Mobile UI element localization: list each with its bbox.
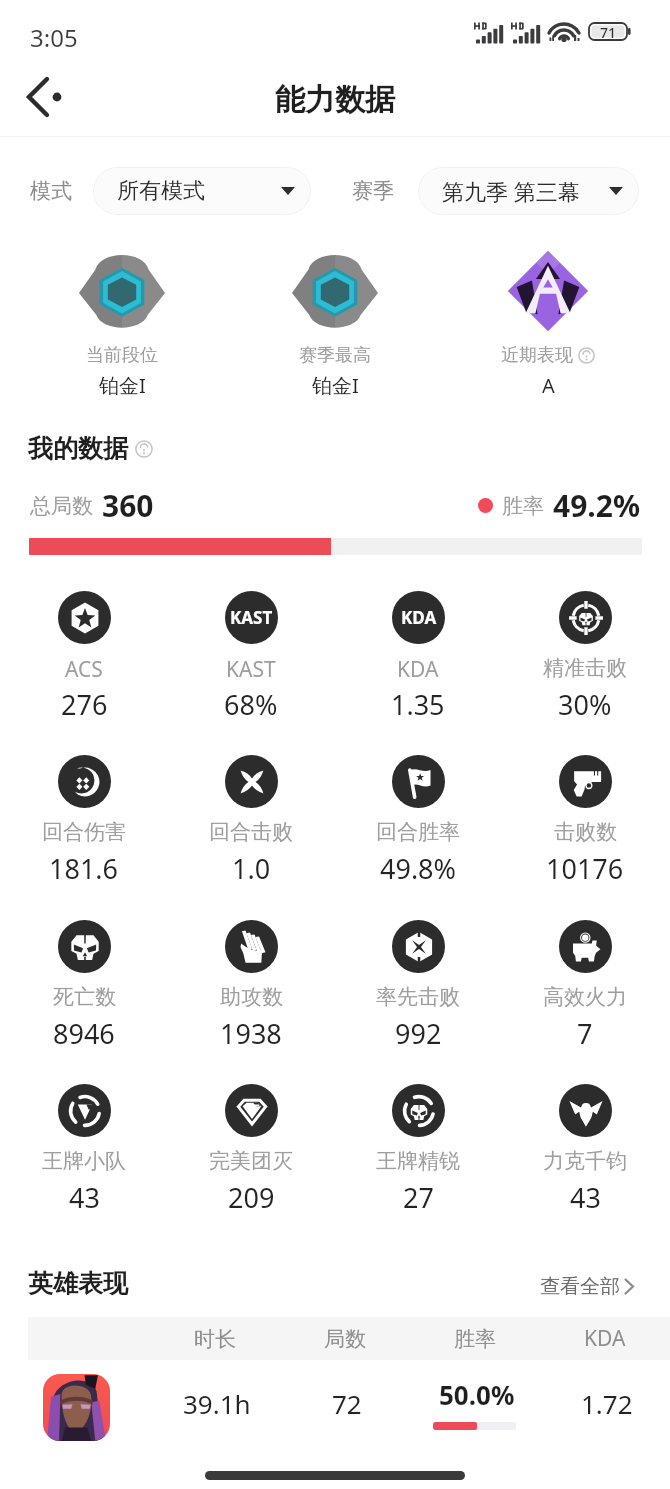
button[interactable]: 近期表现 xyxy=(488,232,608,412)
button[interactable] xyxy=(43,1374,110,1441)
staticText: KDA xyxy=(397,655,439,684)
staticText: ACS xyxy=(65,655,103,684)
staticText: 英雄表现 xyxy=(28,1268,128,1299)
button[interactable]: 完美团灭 xyxy=(171,1076,331,1221)
button[interactable]: 第九季 第三幕 xyxy=(418,167,639,215)
staticText: 能力数据 xyxy=(275,81,395,119)
button[interactable]: 助攻数 xyxy=(171,912,331,1057)
button[interactable]: 击败数 xyxy=(505,747,665,892)
staticText: 回合胜率 xyxy=(376,819,460,845)
staticText: KDA xyxy=(401,606,437,629)
staticText: 209 xyxy=(228,1179,275,1216)
staticText: 39.1h xyxy=(183,1386,251,1421)
staticText: 8946 xyxy=(53,1015,115,1052)
button[interactable]: 王牌精锐 xyxy=(338,1076,498,1221)
button[interactable]: 精准击败 xyxy=(505,583,665,728)
staticText: 近期表现 xyxy=(501,344,573,367)
staticText: 回合伤害 xyxy=(42,819,126,845)
staticText: 276 xyxy=(61,686,108,723)
staticText: A xyxy=(542,372,555,399)
staticText: 胜率 xyxy=(502,493,544,519)
staticText: 27 xyxy=(403,1179,434,1216)
staticText: 30% xyxy=(558,686,612,723)
staticText: 赛季 xyxy=(352,178,394,204)
staticText: 7 xyxy=(577,1015,593,1052)
staticText: KAST xyxy=(230,606,273,629)
staticText: 铂金I xyxy=(99,372,146,399)
staticText: 1.35 xyxy=(391,686,445,723)
staticText: 击败数 xyxy=(554,819,617,845)
staticText: 赛季最高 xyxy=(299,344,371,367)
staticText: 局数 xyxy=(324,1326,366,1352)
staticText: 率先击败 xyxy=(376,984,460,1010)
staticText: 力克千钧 xyxy=(543,1148,627,1174)
button[interactable]: 力克千钧 xyxy=(505,1076,665,1221)
button[interactable]: 高效火力 xyxy=(505,912,665,1057)
staticText: 回合击败 xyxy=(209,819,293,845)
staticText: 992 xyxy=(395,1015,442,1052)
button[interactable]: 当前段位 xyxy=(62,232,182,412)
staticText: 43 xyxy=(570,1179,601,1216)
button[interactable]: 王牌小队 xyxy=(4,1076,164,1221)
staticText: 第九季 第三幕 xyxy=(442,176,580,206)
button[interactable]: 死亡数 xyxy=(4,912,164,1057)
button[interactable]: 赛季最高 xyxy=(275,232,395,412)
button[interactable]: 查看全部 xyxy=(540,1274,635,1299)
staticText: 铂金I xyxy=(312,372,359,399)
staticText: KAST xyxy=(226,655,276,684)
staticText: 3:05 xyxy=(30,21,78,54)
staticText: 71 xyxy=(600,23,617,40)
staticText: 当前段位 xyxy=(86,344,158,367)
staticText: 精准击败 xyxy=(543,655,627,681)
staticText: 王牌精锐 xyxy=(376,1148,460,1174)
button[interactable]: KDA xyxy=(338,583,498,728)
staticText: 所有模式 xyxy=(117,177,205,205)
staticText: 1.0 xyxy=(232,850,271,887)
staticText: 10176 xyxy=(546,850,624,887)
staticText: 49.8% xyxy=(380,850,457,887)
staticText: KDA xyxy=(584,1324,626,1353)
staticText: 王牌小队 xyxy=(42,1148,126,1174)
staticText: 高效火力 xyxy=(543,984,627,1010)
staticText: 助攻数 xyxy=(220,984,283,1010)
staticText: 50.0% xyxy=(439,1377,515,1412)
staticText: 49.2% xyxy=(553,485,640,526)
staticText: 43 xyxy=(69,1179,100,1216)
staticText: 查看全部 xyxy=(540,1274,620,1299)
staticText: 360 xyxy=(102,485,154,526)
staticText: 68% xyxy=(224,686,278,723)
button[interactable]: 率先击败 xyxy=(338,912,498,1057)
staticText: 总局数 xyxy=(30,493,93,519)
button[interactable]: KAST xyxy=(171,583,331,728)
staticText: 1.72 xyxy=(581,1386,633,1421)
staticText: 胜率 xyxy=(454,1326,496,1352)
staticText: 72 xyxy=(332,1386,362,1421)
staticText: 模式 xyxy=(30,178,72,204)
staticText: 181.6 xyxy=(49,850,119,887)
staticText: 我的数据 xyxy=(28,433,128,464)
button[interactable]: 回合伤害 xyxy=(4,747,164,892)
button[interactable]: ACS xyxy=(4,583,164,728)
button[interactable]: 回合击败 xyxy=(171,747,331,892)
button[interactable]: Back xyxy=(14,70,68,124)
staticText: 时长 xyxy=(194,1326,236,1352)
staticText: 完美团灭 xyxy=(209,1148,293,1174)
staticText: 1938 xyxy=(220,1015,282,1052)
button[interactable]: 回合胜率 xyxy=(338,747,498,892)
staticText: 死亡数 xyxy=(53,984,116,1010)
button[interactable]: 所有模式 xyxy=(93,167,311,215)
